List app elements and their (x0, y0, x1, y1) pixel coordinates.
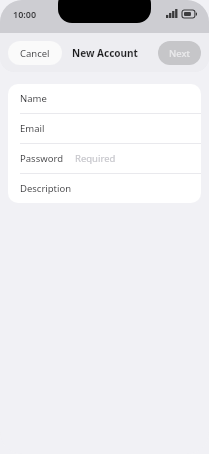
button[interactable]: Name (8, 84, 201, 114)
staticText: Password (20, 152, 63, 165)
staticText: Description (20, 182, 72, 195)
button[interactable]: Next (158, 41, 201, 65)
button[interactable]: Description (8, 174, 201, 203)
button[interactable]: Cancel (8, 41, 62, 65)
staticText: Next (169, 47, 190, 60)
staticText: Required (75, 152, 116, 165)
staticText: Cancel (20, 47, 50, 60)
staticText: Email (20, 122, 45, 135)
button[interactable]: Password (8, 144, 201, 174)
staticText: Name (20, 92, 47, 105)
button[interactable]: Email (8, 114, 201, 144)
staticText: 10:00 (13, 8, 37, 20)
staticText: New Account (72, 46, 138, 60)
